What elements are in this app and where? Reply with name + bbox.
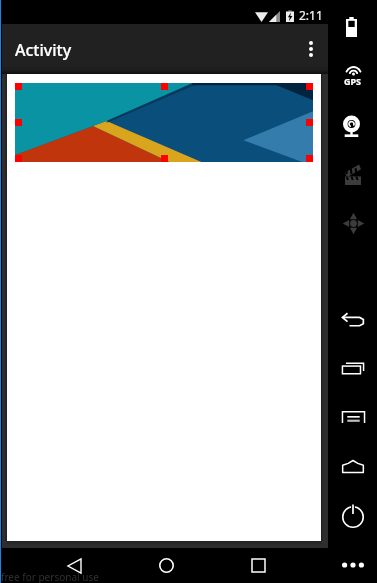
button[interactable]: Home: [342, 460, 364, 473]
button[interactable]: Battery: [346, 17, 357, 37]
staticText: Activity: [15, 39, 72, 61]
staticText: 2:11: [299, 7, 323, 23]
button[interactable]: Recent apps: [240, 548, 276, 583]
button[interactable]: Webcam: [343, 115, 360, 137]
button[interactable]: Directional pad: [343, 213, 364, 234]
button[interactable]: More options: [294, 24, 328, 74]
button[interactable]: Power: [342, 504, 364, 527]
button[interactable]: Record screen: [345, 164, 361, 185]
button[interactable]: Home: [148, 548, 184, 583]
staticText: GPS: [344, 75, 362, 87]
staticText: free for personal use: [1, 570, 99, 583]
button[interactable]: Overview: [342, 362, 364, 374]
button[interactable]: Back: [342, 313, 364, 326]
button[interactable]: More: [342, 562, 364, 568]
button[interactable]: Back: [56, 548, 92, 583]
button[interactable]: Menu: [342, 411, 365, 423]
